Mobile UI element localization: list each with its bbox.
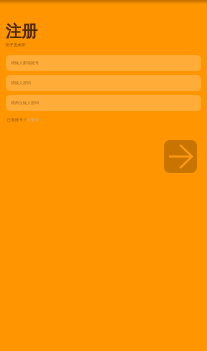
staticText: 请输入密码 bbox=[11, 80, 31, 85]
staticText: 光子去水印 bbox=[5, 42, 25, 47]
staticText: 去登录 bbox=[27, 117, 39, 122]
button[interactable]: 已有账号？ bbox=[7, 117, 39, 122]
staticText: 请再次输入密码 bbox=[11, 100, 39, 105]
staticText: 已有账号？ bbox=[7, 117, 27, 122]
staticText: 请输入邮箱账号 bbox=[11, 60, 39, 65]
staticText: 注册 bbox=[5, 22, 37, 41]
button[interactable]: Next bbox=[164, 140, 197, 173]
